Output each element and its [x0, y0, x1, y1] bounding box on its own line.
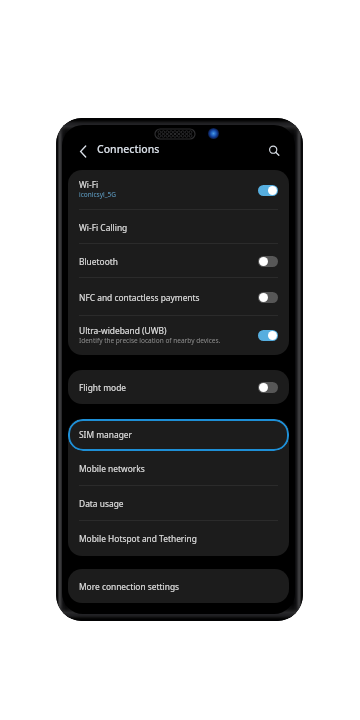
staticText: More connection settings: [79, 581, 180, 592]
button[interactable]: Toggle on: [258, 330, 278, 341]
button[interactable]: Flight mode: [68, 370, 289, 404]
button[interactable]: Toggle off: [258, 292, 278, 303]
staticText: Wi-Fi Calling: [79, 222, 128, 233]
staticText: Bluetooth: [79, 256, 118, 267]
button[interactable]: Toggle off: [258, 256, 278, 267]
staticText: Ultra-wideband (UWB): [79, 325, 167, 336]
button[interactable]: Bluetooth: [68, 244, 289, 278]
button[interactable]: Wi-Fi: [68, 170, 289, 210]
button[interactable]: Wi-Fi Calling: [68, 210, 289, 244]
staticText: Mobile networks: [79, 463, 145, 474]
button[interactable]: Mobile Hotspot and Tethering: [68, 521, 289, 556]
button[interactable]: SIM manager: [68, 419, 289, 451]
button[interactable]: Mobile networks: [68, 451, 289, 486]
staticText: Mobile Hotspot and Tethering: [79, 533, 197, 544]
button[interactable]: Ultra-wideband (UWB): [68, 316, 289, 355]
staticText: Identify the precise location of nearby …: [79, 336, 221, 345]
button[interactable]: Toggle on: [258, 185, 278, 196]
staticText: Flight mode: [79, 382, 127, 393]
staticText: NFC and contactless payments: [79, 292, 200, 303]
staticText: iconicsyl_5G: [79, 190, 116, 199]
staticText: Wi-Fi: [79, 179, 99, 190]
button[interactable]: Data usage: [68, 486, 289, 521]
button[interactable]: Toggle off: [258, 382, 278, 393]
staticText: Connections: [97, 142, 160, 156]
button[interactable]: More connection settings: [68, 569, 289, 603]
staticText: SIM manager: [79, 429, 133, 440]
button[interactable]: Search: [261, 138, 287, 164]
button[interactable]: Navigate up: [70, 138, 96, 164]
button[interactable]: NFC and contactless payments: [68, 278, 289, 316]
staticText: Data usage: [79, 498, 124, 509]
